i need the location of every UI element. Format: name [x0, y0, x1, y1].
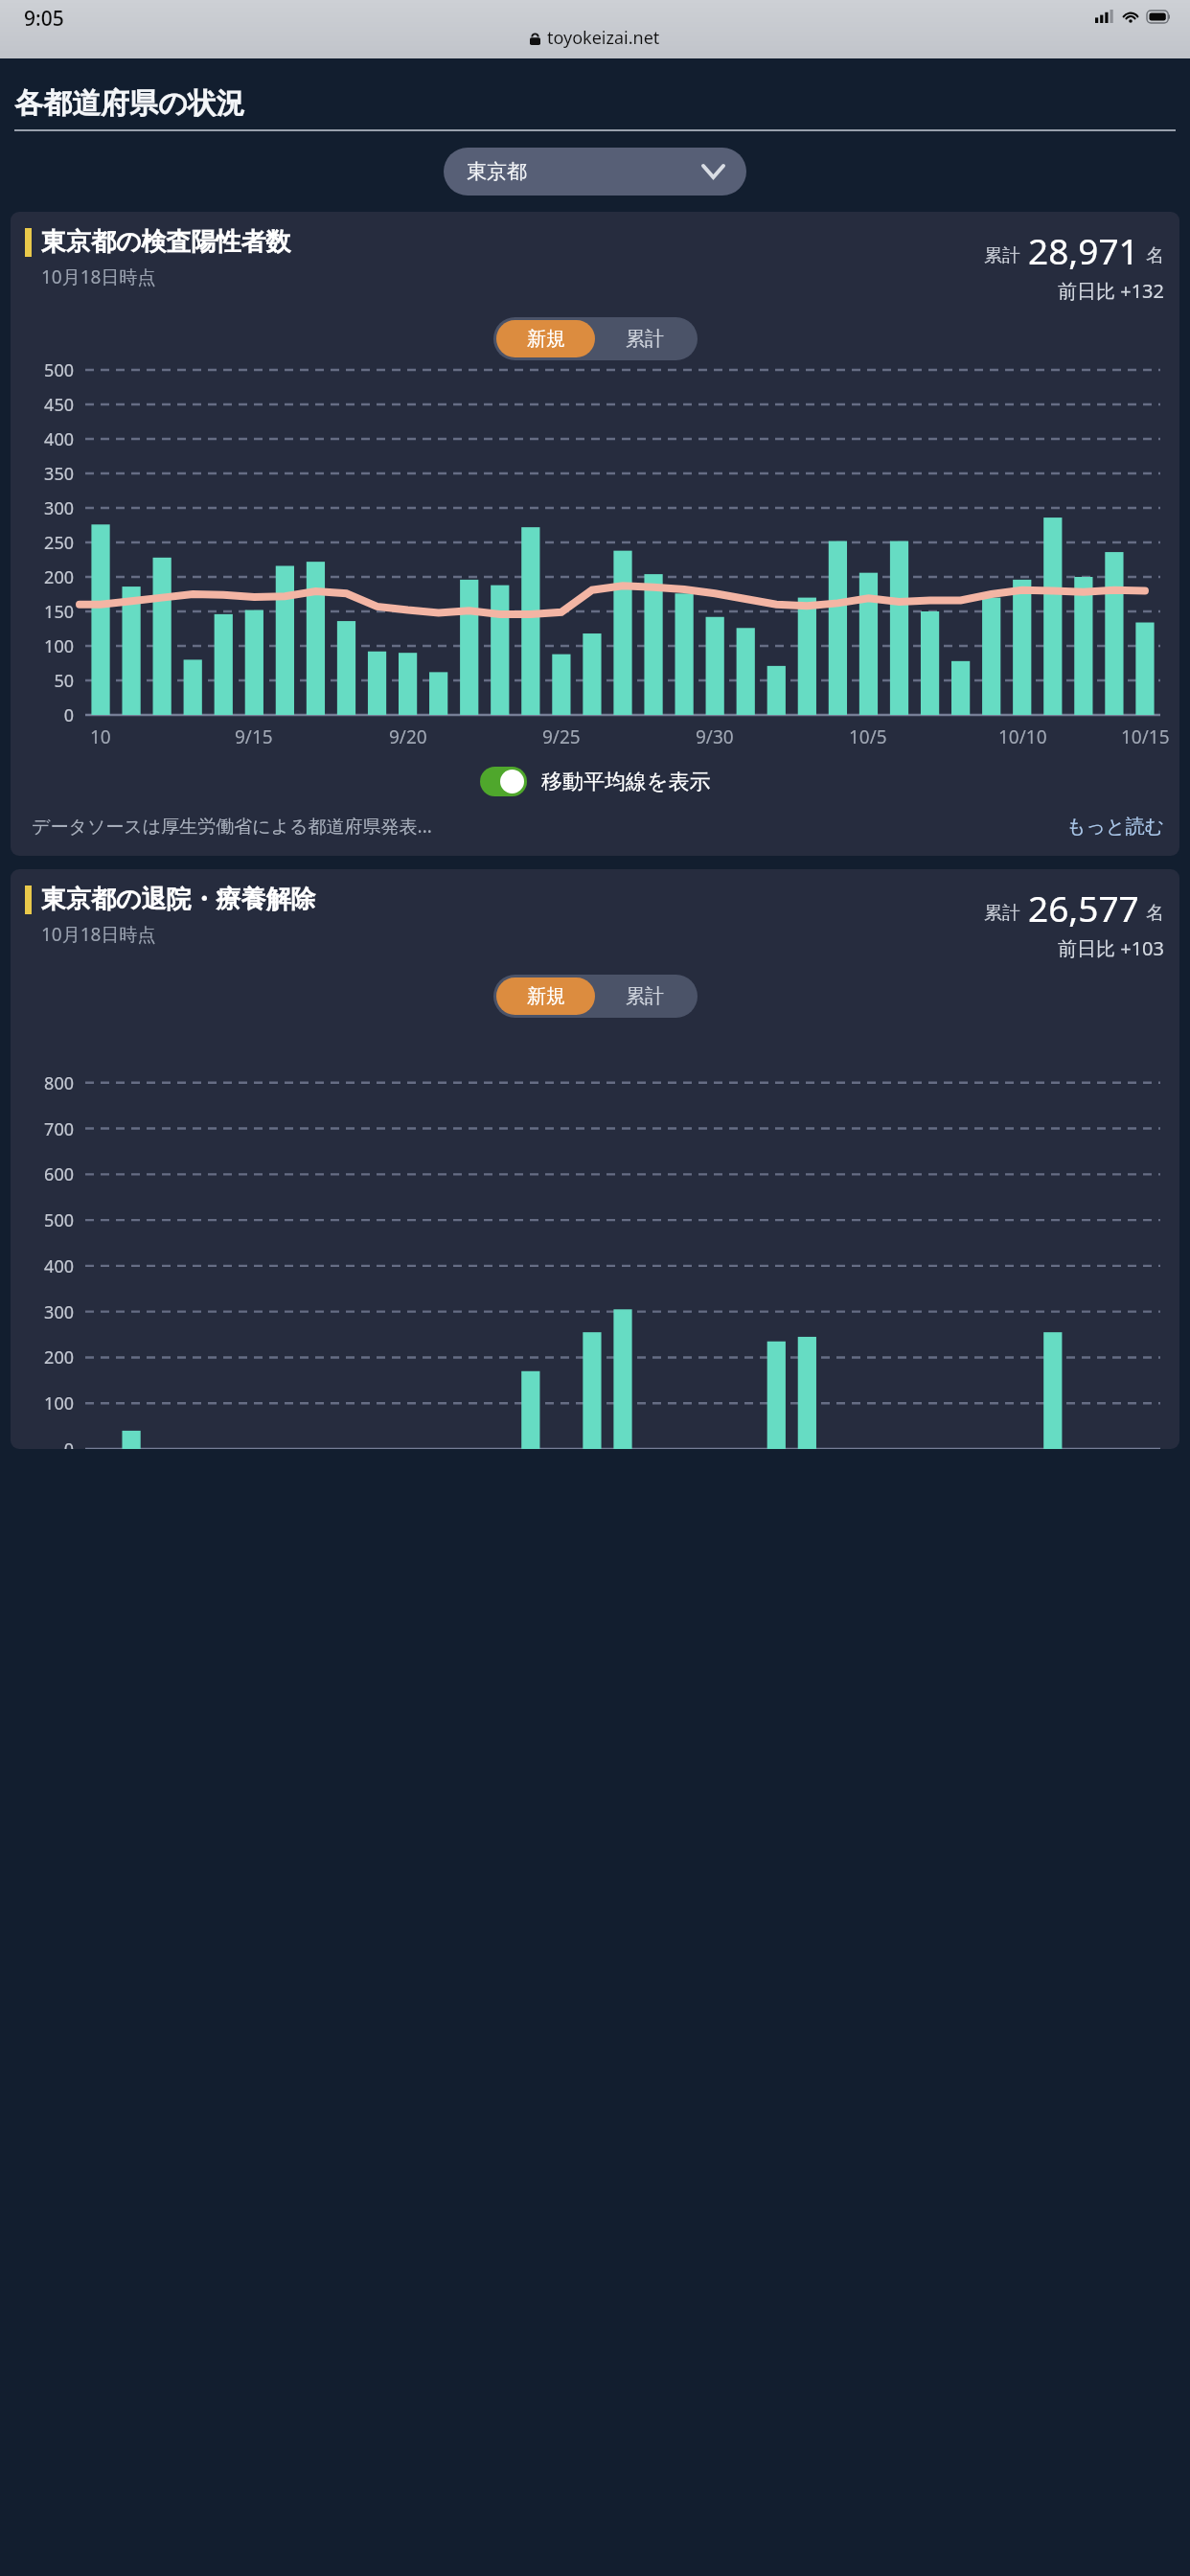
button[interactable]: 累計 [595, 320, 695, 357]
staticText: 10 [90, 724, 111, 749]
staticText: 26,577 [1028, 884, 1139, 931]
staticText: 10/5 [849, 724, 887, 749]
staticText: 28,971 [1028, 226, 1139, 274]
staticText: 東京都 [467, 159, 703, 184]
staticText: 10/15 [1121, 724, 1170, 749]
staticText: 新規 [527, 984, 565, 1008]
staticText: 東京都の退院・療養解除 [41, 884, 316, 915]
staticText: 累計 [626, 984, 664, 1008]
staticText: 400 [44, 1254, 74, 1278]
staticText: 200 [44, 1345, 74, 1369]
staticText: 名 [1146, 902, 1164, 925]
button[interactable]: もっと読む [1066, 815, 1164, 839]
staticText: 9/30 [696, 724, 734, 749]
staticText: 50 [54, 669, 74, 693]
staticText: 東京都の検査陽性者数 [41, 226, 291, 258]
staticText: 累計 [626, 327, 664, 351]
staticText: 名 [1146, 244, 1164, 267]
staticText: 100 [44, 634, 74, 658]
other: 移動平均線を表示 [480, 767, 527, 796]
staticText: 500 [44, 358, 74, 382]
staticText: 800 [44, 1071, 74, 1095]
staticText: 700 [44, 1117, 74, 1141]
staticText: 200 [44, 565, 74, 589]
staticText: 各都道府県の状況 [14, 85, 245, 122]
button[interactable]: 新規 [496, 977, 595, 1015]
staticText: toyokeizai.net [547, 26, 660, 50]
staticText: 150 [44, 600, 74, 624]
staticText: 300 [44, 1300, 74, 1324]
button[interactable]: 東京都 [444, 148, 746, 195]
staticText: 累計 [984, 244, 1020, 267]
staticText: データソースは厚生労働省による都道府県発表... [32, 814, 1055, 839]
staticText: 新規 [527, 327, 565, 351]
staticText: 0 [63, 1437, 74, 1449]
staticText: 10月18日時点 [41, 922, 156, 947]
button[interactable]: 移動平均線を表示 [11, 767, 1179, 796]
staticText: 9/15 [235, 724, 273, 749]
staticText: 100 [44, 1391, 74, 1415]
staticText: 350 [44, 462, 74, 486]
staticText: 9/25 [542, 724, 581, 749]
button[interactable]: 累計 [595, 977, 695, 1015]
staticText: 前日比 +103 [1058, 935, 1164, 961]
staticText: 600 [44, 1162, 74, 1186]
staticText: 300 [44, 496, 74, 520]
staticText: 9/20 [389, 724, 427, 749]
staticText: 10/10 [998, 724, 1047, 749]
staticText: 累計 [984, 902, 1020, 925]
staticText: 前日比 +132 [1058, 278, 1164, 304]
staticText: 10月18日時点 [41, 264, 156, 289]
button[interactable]: 新規 [496, 320, 595, 357]
staticText: 400 [44, 427, 74, 451]
staticText: 450 [44, 393, 74, 417]
staticText: 500 [44, 1208, 74, 1232]
staticText: 0 [63, 703, 74, 727]
staticText: 移動平均線を表示 [541, 769, 711, 795]
staticText: 9:05 [24, 5, 64, 33]
staticText: 250 [44, 531, 74, 555]
staticText: もっと読む [1066, 815, 1164, 839]
